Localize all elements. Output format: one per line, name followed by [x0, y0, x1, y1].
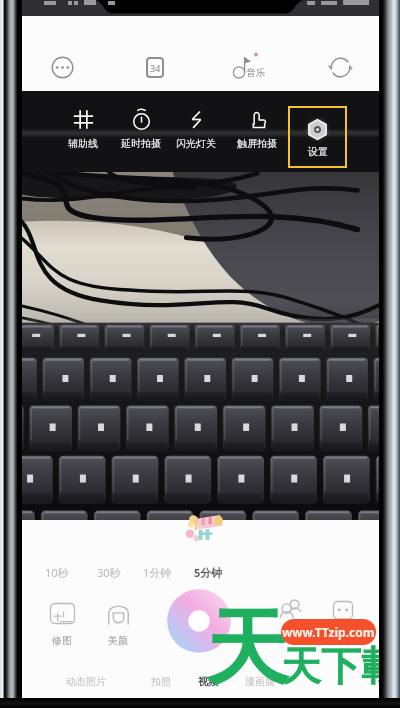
staticText: 修图 — [52, 634, 72, 647]
staticText: 34 — [150, 62, 161, 74]
button[interactable]: Switch camera — [320, 47, 360, 87]
staticText: 10秒 — [45, 565, 69, 580]
button[interactable]: 延时拍摄 — [113, 109, 169, 150]
staticText: 动态照片 — [66, 675, 106, 688]
button[interactable]: Shutter — [167, 589, 231, 653]
staticText: 触屏拍摄 — [237, 137, 277, 150]
staticText: 音乐 — [246, 67, 265, 79]
button[interactable]: 10秒 — [35, 561, 79, 583]
staticText: www.TTzip.com — [282, 624, 375, 640]
staticText: 美颜 — [108, 634, 128, 647]
staticText: 辅助线 — [68, 137, 98, 150]
staticText: 天 — [206, 597, 288, 698]
staticText: 拍照 — [151, 675, 171, 688]
button[interactable]: 修图 — [44, 601, 80, 647]
button[interactable]: 音乐 — [227, 50, 283, 84]
button[interactable]: Filters — [276, 596, 306, 626]
button[interactable]: 1分钟 — [135, 561, 179, 583]
staticText: 闪光灯关 — [176, 137, 216, 150]
button[interactable]: 拍照 — [135, 668, 187, 694]
button[interactable]: 闪光灯关 — [168, 109, 224, 150]
button[interactable]: 美颜 — [100, 601, 136, 647]
staticText: 延时拍摄 — [121, 137, 161, 150]
button[interactable]: More options — [42, 47, 82, 87]
staticText: 天下載 — [281, 641, 379, 691]
button[interactable]: 漫画脸 — [234, 668, 286, 694]
staticText: 1分钟 — [143, 565, 172, 580]
staticText: 5分钟 — [194, 565, 223, 580]
button[interactable]: 触屏拍摄 — [229, 109, 285, 150]
staticText: 设置 — [308, 145, 328, 158]
button[interactable]: 动态照片 — [60, 668, 112, 694]
button[interactable]: 视频 — [182, 668, 234, 694]
staticText: 30秒 — [97, 565, 121, 580]
button[interactable]: 设置 — [288, 106, 347, 168]
button[interactable]: 5分钟 — [186, 561, 230, 583]
button[interactable]: Resolution 3:4 — [135, 47, 175, 87]
staticText: 视频 — [198, 675, 218, 688]
button[interactable]: 30秒 — [87, 561, 131, 583]
button[interactable]: AR stickers — [329, 597, 357, 625]
button[interactable]: 辅助线 — [55, 109, 111, 150]
staticText: 漫画脸 — [245, 675, 275, 688]
